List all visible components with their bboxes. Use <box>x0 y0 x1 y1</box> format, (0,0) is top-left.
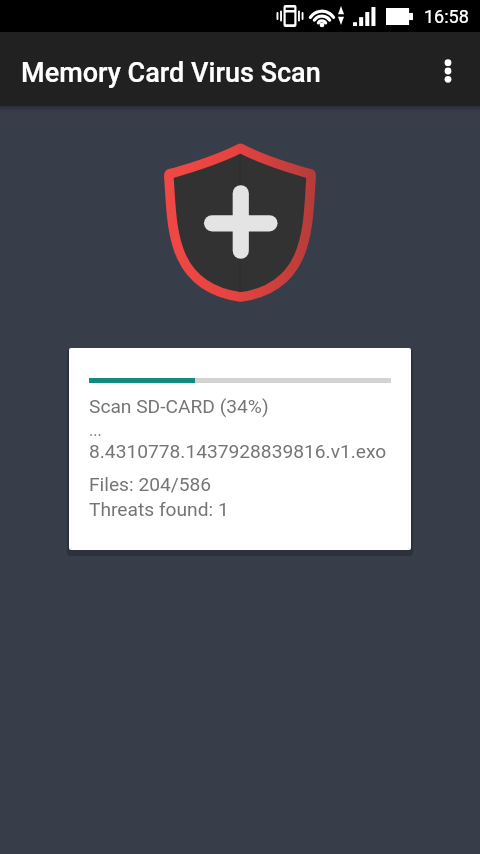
button[interactable]: More options <box>424 45 472 93</box>
staticText: Threats found: 1 <box>89 498 229 521</box>
staticText: Files: 204/586 <box>89 473 212 496</box>
button[interactable]: Scan SD-CARD (34%) <box>69 348 411 550</box>
staticText: Memory Card Virus Scan <box>21 57 321 89</box>
staticText: 8.4310778.1437928839816.v1.exo <box>89 440 387 463</box>
staticText: 16:58 <box>424 6 469 27</box>
staticText: ... <box>89 421 102 440</box>
staticText: Scan SD-CARD (34%) <box>89 395 269 418</box>
